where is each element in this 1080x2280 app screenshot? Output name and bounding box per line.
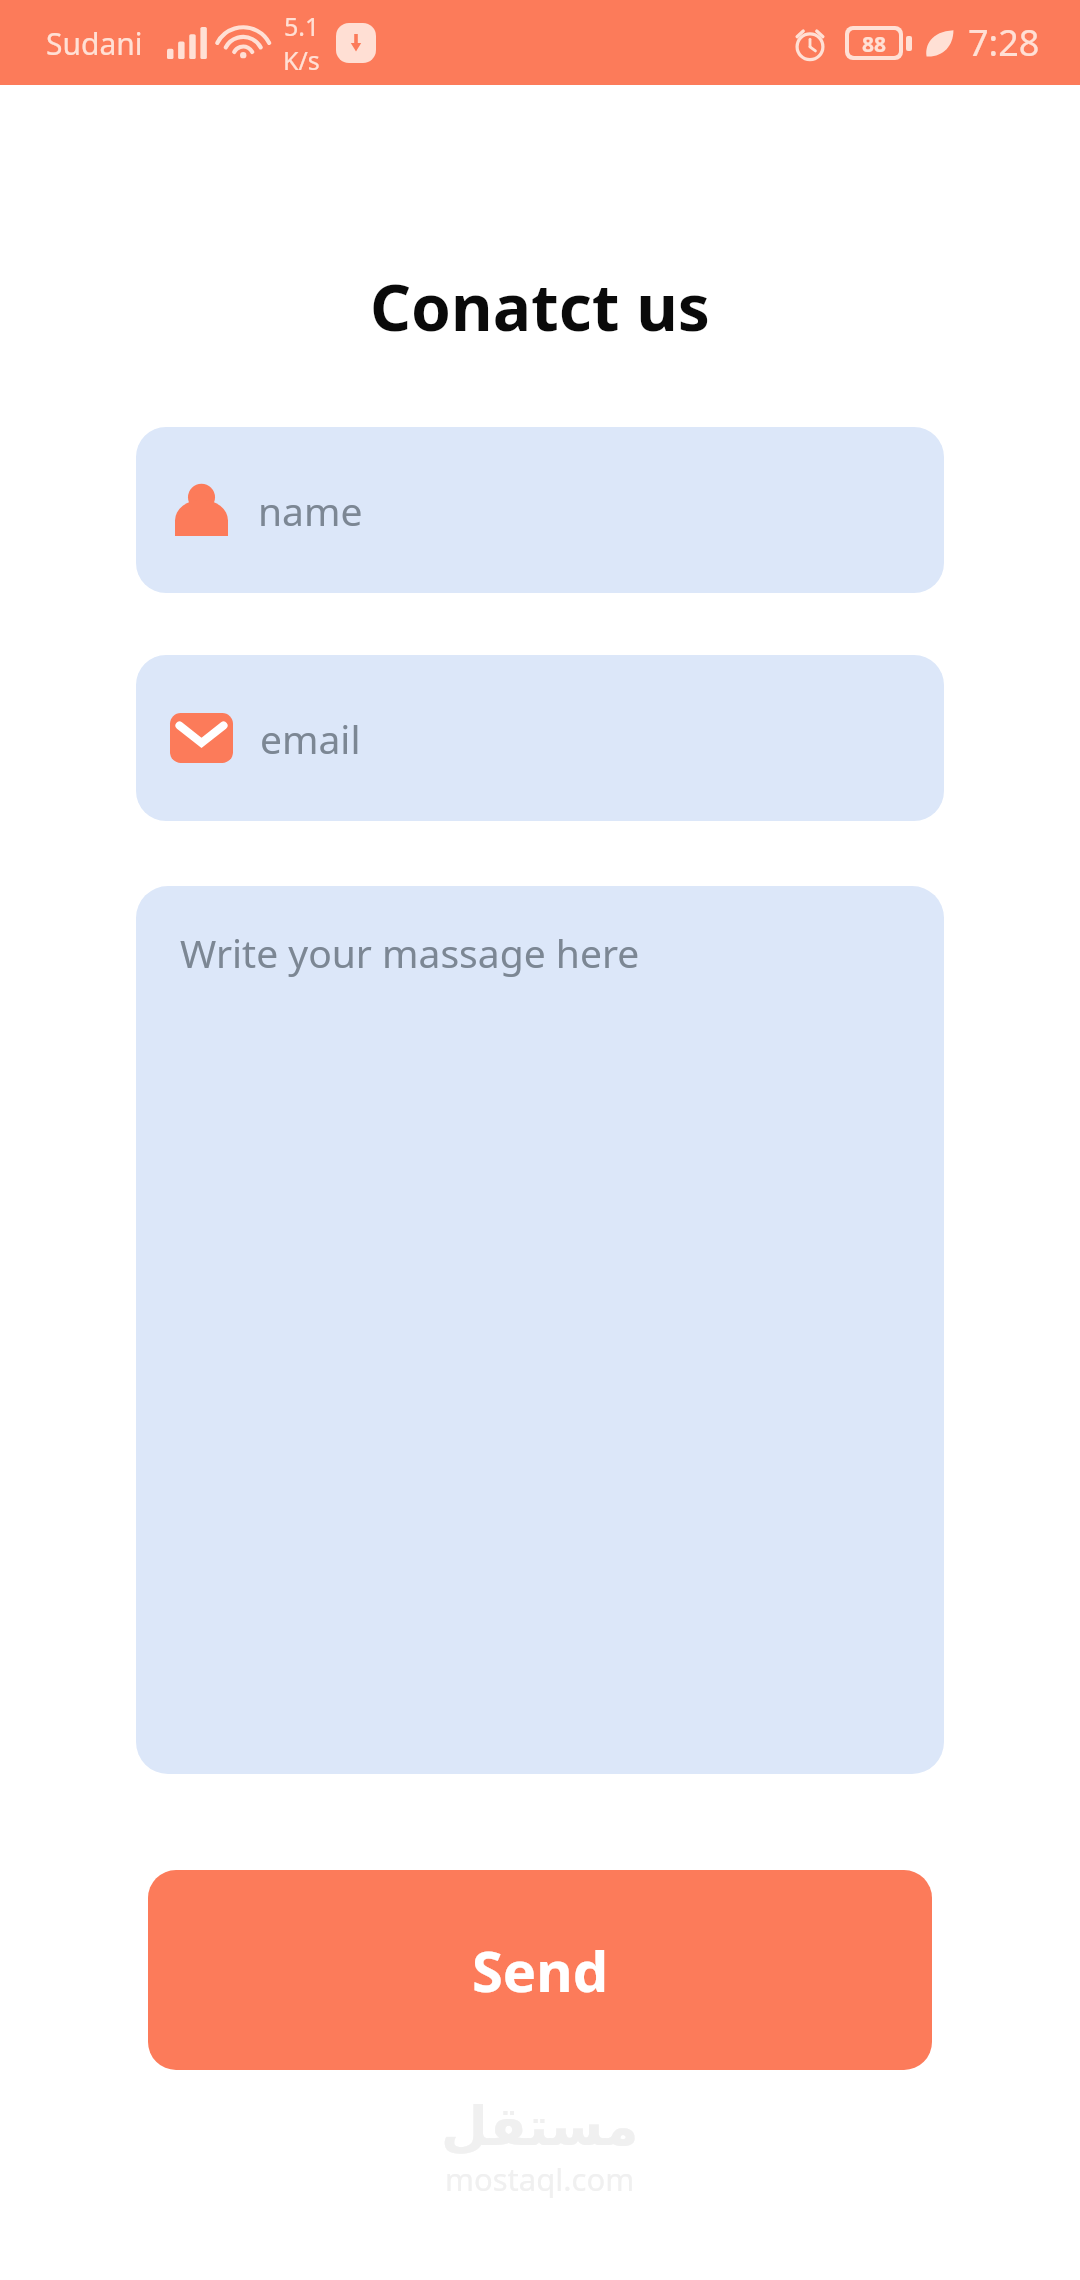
- staticText: Send: [472, 1932, 609, 2008]
- staticText: email: [260, 712, 361, 765]
- staticText: Sudani: [46, 23, 143, 64]
- staticText: 5.1: [284, 9, 320, 43]
- button[interactable]: Name: [136, 427, 944, 593]
- staticText: 7:28: [968, 18, 1040, 67]
- staticText: K/s: [283, 43, 320, 77]
- button[interactable]: Send: [148, 1870, 932, 2070]
- button[interactable]: Email: [136, 655, 944, 821]
- staticText: name: [258, 484, 363, 537]
- staticText: مستقل: [441, 2095, 639, 2158]
- button[interactable]: Write your massage here: [136, 886, 944, 1774]
- staticText: Conatct us: [370, 263, 710, 350]
- staticText: mostaql.com: [445, 2158, 635, 2200]
- other: Name: [175, 484, 228, 536]
- staticText: Write your massage here: [180, 926, 640, 979]
- staticText: 88: [862, 30, 887, 56]
- other: Email: [170, 713, 233, 763]
